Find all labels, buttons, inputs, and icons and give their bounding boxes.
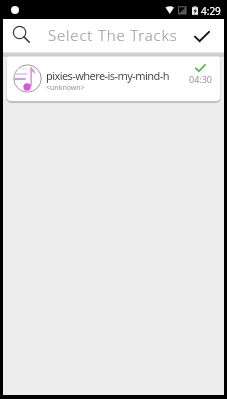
staticText: Select The Tracks [48, 25, 178, 45]
staticText: 4:29 [201, 4, 221, 18]
button[interactable]: Search [3, 20, 41, 52]
button[interactable]: Confirm selection [190, 20, 214, 52]
staticText: pixies-where-is-my-mind-h [46, 68, 169, 83]
button[interactable]: pixies-where-is-my-mind-h [7, 56, 220, 101]
staticText: <unknown> [46, 83, 85, 93]
staticText: 04:30 [189, 73, 213, 85]
